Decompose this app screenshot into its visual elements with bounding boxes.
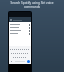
button[interactable]	[11, 47, 13, 51]
button[interactable]	[26, 51, 28, 55]
button[interactable]	[14, 51, 16, 55]
button[interactable]	[20, 55, 22, 59]
button[interactable]	[18, 55, 20, 59]
button[interactable]: Search	[27, 60, 30, 63]
button[interactable]	[24, 51, 26, 55]
button[interactable]: Insert	[9, 23, 31, 26]
button[interactable]	[22, 55, 24, 59]
button[interactable]: Search	[9, 17, 31, 22]
button[interactable]	[9, 47, 11, 51]
button[interactable]	[10, 60, 13, 63]
button[interactable]	[18, 51, 20, 55]
button[interactable]	[20, 51, 22, 55]
button[interactable]	[24, 55, 26, 59]
button[interactable]	[12, 55, 14, 59]
button[interactable]	[25, 47, 27, 51]
button[interactable]	[23, 47, 25, 51]
button[interactable]: Insert	[9, 26, 31, 29]
button[interactable]	[14, 55, 16, 59]
staticText: Search Spotify using Siri voice commands	[2, 1, 62, 9]
button[interactable]	[10, 51, 12, 55]
button[interactable]	[12, 51, 14, 55]
button[interactable]	[15, 47, 17, 51]
button[interactable]	[21, 47, 23, 51]
button[interactable]	[17, 47, 19, 51]
button[interactable]	[16, 51, 18, 55]
button[interactable]: Insert	[9, 32, 31, 35]
button[interactable]	[19, 47, 21, 51]
button[interactable]	[22, 51, 24, 55]
button[interactable]	[16, 55, 18, 59]
button[interactable]: Insert	[9, 29, 31, 32]
button[interactable]	[13, 47, 15, 51]
button[interactable]	[27, 47, 29, 51]
